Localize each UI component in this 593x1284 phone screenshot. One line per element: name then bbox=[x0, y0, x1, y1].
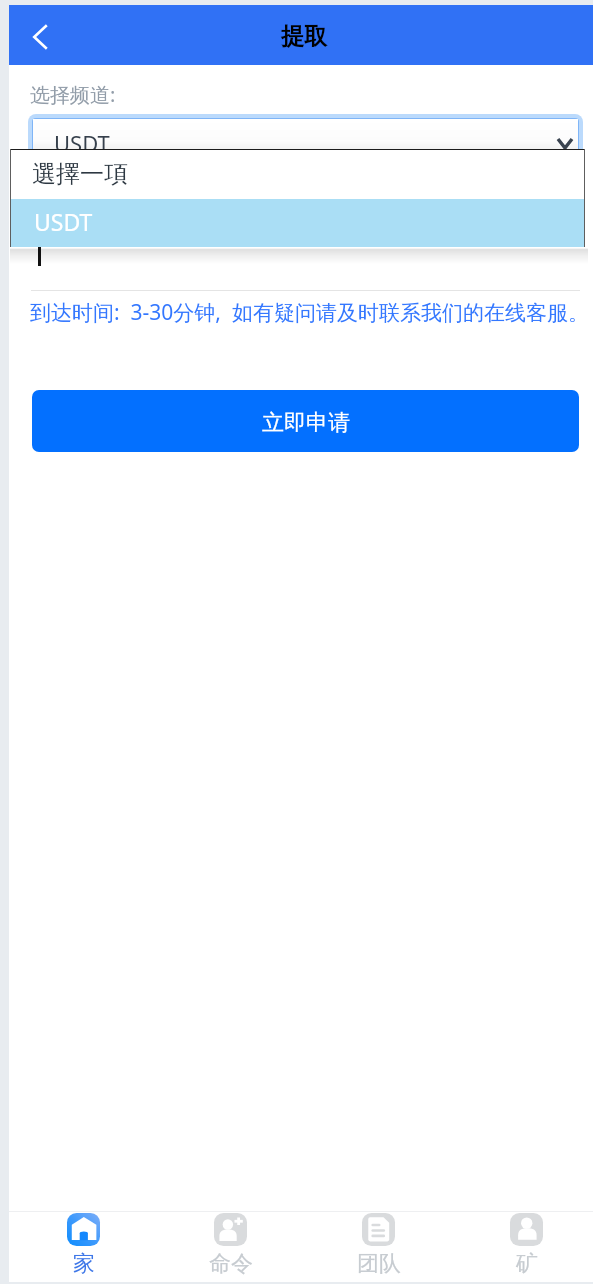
staticText: 到达时间: 3-30分钟, 如有疑问请及时联系我们的在线客服。 bbox=[30, 298, 589, 327]
staticText: 命令 bbox=[209, 1250, 253, 1278]
staticText: 团队 bbox=[357, 1250, 401, 1278]
staticText: USDT bbox=[54, 128, 110, 158]
button[interactable]: 矿 bbox=[453, 1212, 593, 1282]
button[interactable]: 命令 bbox=[157, 1212, 304, 1282]
staticText: 提取 bbox=[281, 22, 327, 51]
staticText: 家 bbox=[73, 1250, 95, 1278]
button[interactable]: 团队 bbox=[305, 1212, 452, 1282]
staticText: 選擇一項 bbox=[32, 159, 128, 189]
button[interactable]: USDT bbox=[33, 119, 578, 158]
staticText: USDT bbox=[34, 206, 93, 237]
button[interactable]: 選擇一項 bbox=[11, 150, 584, 199]
staticText: 立即申请 bbox=[262, 409, 350, 437]
staticText: 选择频道: bbox=[30, 81, 116, 108]
button[interactable]: 立即申请 bbox=[32, 390, 579, 452]
staticText: 矿 bbox=[516, 1250, 538, 1278]
button[interactable]: 家 bbox=[10, 1212, 157, 1282]
button[interactable]: Back bbox=[9, 5, 67, 65]
button[interactable]: USDT bbox=[11, 199, 584, 247]
